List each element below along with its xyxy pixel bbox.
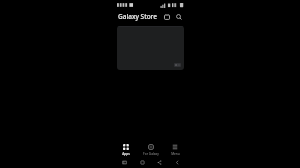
button[interactable]: Share <box>152 157 166 168</box>
button[interactable]: Menu <box>163 141 187 157</box>
button[interactable]: Back <box>170 157 184 168</box>
button[interactable]: Recents <box>117 157 131 168</box>
staticText: For Galaxy <box>143 152 159 156</box>
staticText: Galaxy Store <box>118 12 157 21</box>
button[interactable]: Search <box>173 11 184 22</box>
staticText: Menu <box>171 152 180 156</box>
staticText: Apps <box>122 152 130 156</box>
button[interactable]: My apps <box>161 11 172 22</box>
button[interactable]: Home <box>135 157 149 168</box>
button[interactable]: For Galaxy <box>139 141 163 157</box>
button[interactable] <box>117 26 184 70</box>
button[interactable]: Apps <box>114 141 138 157</box>
